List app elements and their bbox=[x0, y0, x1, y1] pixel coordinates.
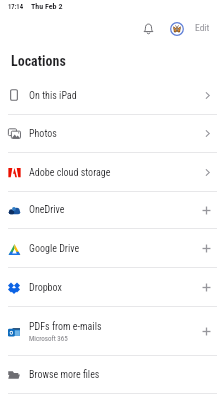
staticText: Microsoft 365 bbox=[29, 335, 68, 343]
button[interactable]: Google Drive bbox=[0, 229, 222, 268]
button[interactable]: Dropbox bbox=[0, 268, 222, 307]
staticText: Locations bbox=[11, 53, 66, 69]
button[interactable]: On this iPad bbox=[0, 76, 222, 115]
staticText: On this iPad bbox=[29, 90, 77, 102]
button[interactable]: PDFs from e-mails bbox=[0, 307, 222, 356]
staticText: Adobe cloud storage bbox=[29, 167, 111, 179]
button[interactable]: Notifications bbox=[140, 20, 156, 36]
staticText: PDFs from e-mails bbox=[29, 321, 102, 333]
button[interactable]: Photos bbox=[0, 114, 222, 153]
staticText: Edit bbox=[195, 22, 210, 33]
staticText: Dropbox bbox=[29, 282, 62, 294]
button[interactable]: Adobe cloud storage bbox=[0, 153, 222, 192]
button[interactable]: Browse more files bbox=[0, 356, 222, 394]
staticText: OneDrive bbox=[29, 204, 65, 216]
staticText: Photos bbox=[29, 128, 57, 140]
staticText: Browse more files bbox=[29, 369, 100, 381]
staticText: Thu Feb 2 bbox=[31, 2, 63, 11]
button[interactable]: OneDrive bbox=[0, 191, 222, 229]
button[interactable]: Account bbox=[168, 20, 185, 37]
button[interactable]: Edit bbox=[195, 22, 210, 33]
staticText: Google Drive bbox=[29, 243, 80, 255]
staticText: 17:14 bbox=[8, 3, 23, 11]
